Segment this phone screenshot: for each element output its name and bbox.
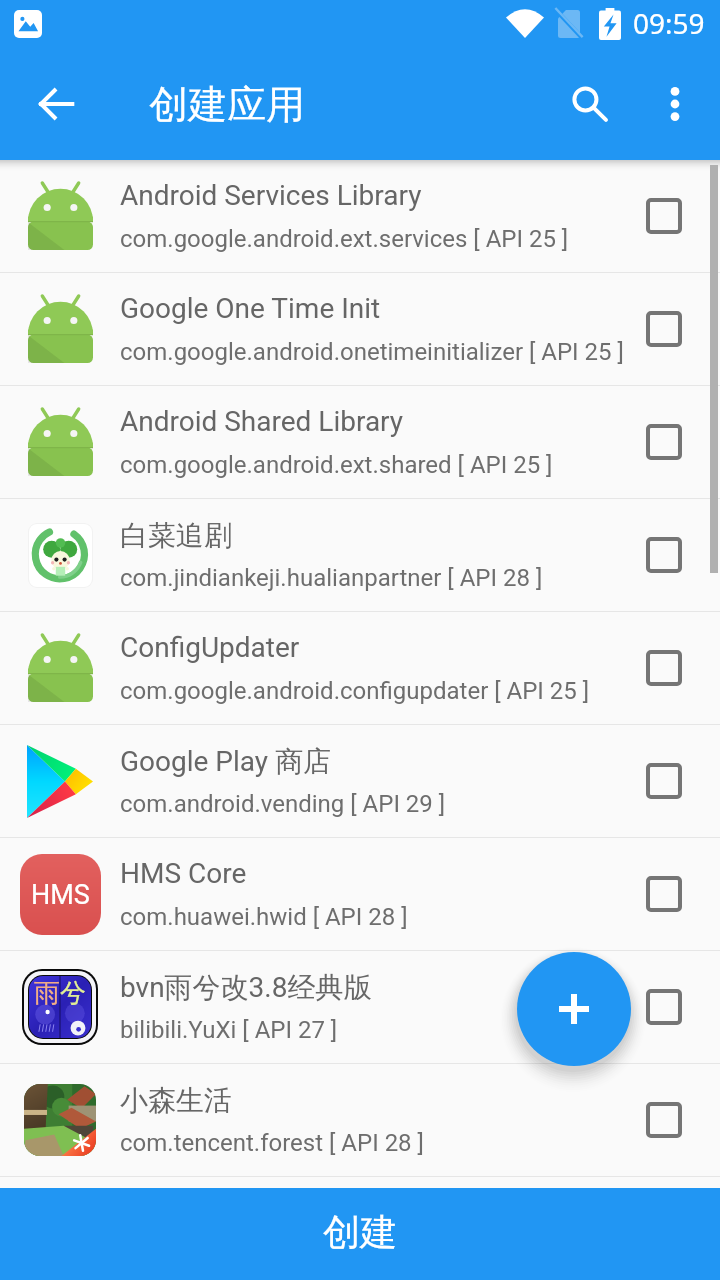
- button[interactable]: HMS: [0, 838, 720, 950]
- staticText: bilibili.YuXi [ API 27 ]: [120, 1016, 338, 1044]
- staticText: Google Play 商店: [120, 744, 332, 779]
- button[interactable]: ConfigUpdater: [0, 612, 720, 724]
- button[interactable]: Android Shared Library: [0, 386, 720, 498]
- staticText: ConfigUpdater: [120, 631, 300, 664]
- staticText: 创建: [323, 1209, 397, 1256]
- button[interactable]: Select app: [628, 499, 700, 611]
- button[interactable]: Select app: [628, 386, 700, 498]
- staticText: 白菜追剧: [120, 518, 232, 553]
- button[interactable]: Select app: [628, 951, 700, 1063]
- button[interactable]: Select app: [628, 725, 700, 837]
- button[interactable]: Search: [558, 72, 622, 136]
- button[interactable]: Back: [24, 72, 88, 136]
- button[interactable]: 雨: [0, 951, 720, 1063]
- button[interactable]: Add: [517, 952, 631, 1066]
- staticText: com.android.vending [ API 29 ]: [120, 790, 446, 818]
- staticText: com.google.android.ext.shared [ API 25 ]: [120, 451, 553, 479]
- staticText: com.huawei.hwid [ API 28 ]: [120, 903, 408, 931]
- button[interactable]: 白菜追剧: [0, 499, 720, 611]
- button[interactable]: Google Play 商店: [0, 725, 720, 837]
- button[interactable]: Select app: [628, 1064, 700, 1176]
- staticText: HMS Core: [120, 857, 247, 890]
- staticText: com.google.android.configupdater [ API 2…: [120, 677, 590, 705]
- staticText: com.tencent.forest [ API 28 ]: [120, 1129, 424, 1157]
- staticText: Android Services Library: [120, 179, 422, 212]
- button[interactable]: Select app: [628, 838, 700, 950]
- staticText: Android Shared Library: [120, 405, 404, 438]
- button[interactable]: More options: [643, 72, 707, 136]
- staticText: 雨: [34, 977, 60, 1010]
- button[interactable]: Select app: [628, 612, 700, 724]
- button[interactable]: Android Services Library: [0, 160, 720, 272]
- staticText: bvn雨兮改3.8经典版: [120, 970, 372, 1005]
- staticText: HMS: [31, 879, 90, 911]
- staticText: com.google.android.onetimeinitializer [ …: [120, 338, 624, 366]
- staticText: com.jindiankeji.hualianpartner [ API 28 …: [120, 564, 543, 592]
- button[interactable]: Google One Time Init: [0, 273, 720, 385]
- button[interactable]: Select app: [628, 160, 700, 272]
- staticText: 创建应用: [149, 80, 305, 129]
- button[interactable]: 小森生活: [0, 1064, 720, 1176]
- staticText: com.google.android.ext.services [ API 25…: [120, 225, 569, 253]
- staticText: 小森生活: [120, 1083, 232, 1118]
- staticText: 09:59: [633, 4, 705, 42]
- staticText: 兮: [60, 977, 86, 1010]
- staticText: Google One Time Init: [120, 292, 381, 325]
- button[interactable]: 创建: [0, 1188, 720, 1280]
- button[interactable]: Select app: [628, 273, 700, 385]
